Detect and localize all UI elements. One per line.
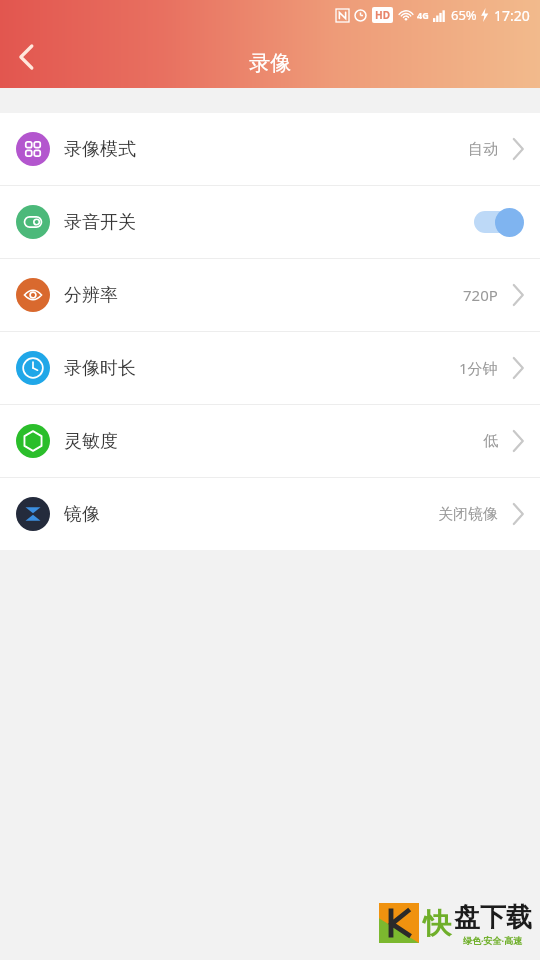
staticText: 录像时长: [64, 357, 136, 380]
staticText: 录像模式: [64, 138, 136, 161]
staticText: 65%: [451, 6, 477, 24]
staticText: 分辨率: [64, 284, 118, 307]
staticText: 镜像: [64, 503, 100, 526]
button[interactable]: 镜像: [0, 478, 540, 550]
button[interactable]: 录音开关: [0, 186, 540, 258]
button[interactable]: 分辨率: [0, 259, 540, 331]
button[interactable]: 录像时长: [0, 332, 540, 404]
staticText: 720P: [463, 285, 498, 305]
staticText: 快: [423, 906, 451, 941]
button[interactable]: Recording audio toggle: [472, 207, 524, 237]
staticText: 17:20: [494, 6, 530, 25]
staticText: 盘下载: [454, 901, 532, 934]
button[interactable]: 灵敏度: [0, 405, 540, 477]
staticText: 低: [483, 432, 498, 451]
staticText: 录音开关: [64, 211, 136, 234]
staticText: 自动: [468, 140, 498, 159]
staticText: 绿色·安全·高速: [463, 934, 523, 946]
staticText: 4G: [417, 9, 429, 21]
staticText: 录像: [249, 50, 291, 76]
staticText: 灵敏度: [64, 430, 118, 453]
button[interactable]: 录像模式: [0, 113, 540, 185]
staticText: 1分钟: [459, 358, 498, 378]
button[interactable]: Back: [0, 30, 54, 84]
staticText: 关闭镜像: [438, 505, 498, 524]
staticText: HD: [375, 8, 390, 22]
